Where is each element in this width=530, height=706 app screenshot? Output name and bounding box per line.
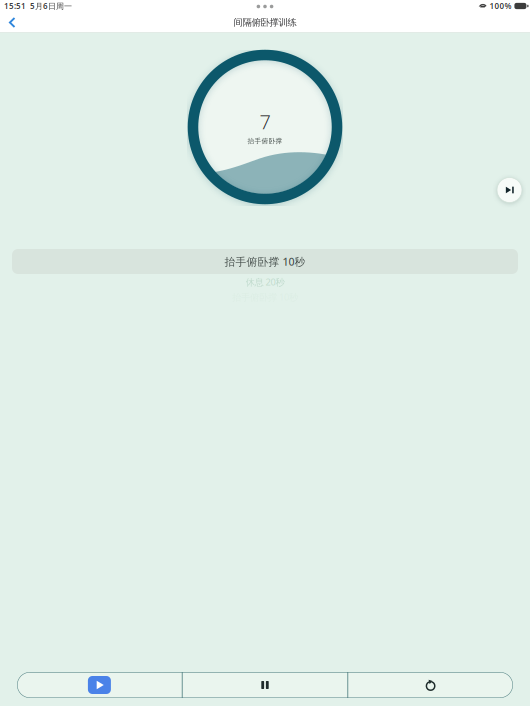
staticText: 间隔俯卧撑训练: [233, 17, 296, 28]
button[interactable]: 抬手俯卧撑 10秒: [12, 249, 518, 274]
button[interactable]: 跳过: [497, 177, 522, 202]
staticText: 5月6日周一: [30, 1, 72, 11]
staticText: 抬手俯卧撑: [247, 137, 282, 145]
staticText: 7: [259, 108, 270, 135]
staticText: 抬手俯卧撑 10秒: [224, 254, 305, 269]
staticText: 100%: [489, 1, 511, 11]
staticText: 休息 20秒: [245, 276, 284, 288]
button[interactable]: 返回: [3, 13, 21, 31]
button[interactable]: 重新开始: [348, 672, 513, 698]
button[interactable]: 开始: [17, 672, 182, 698]
button[interactable]: 暂停: [183, 672, 347, 698]
staticText: 15:51: [4, 1, 26, 11]
